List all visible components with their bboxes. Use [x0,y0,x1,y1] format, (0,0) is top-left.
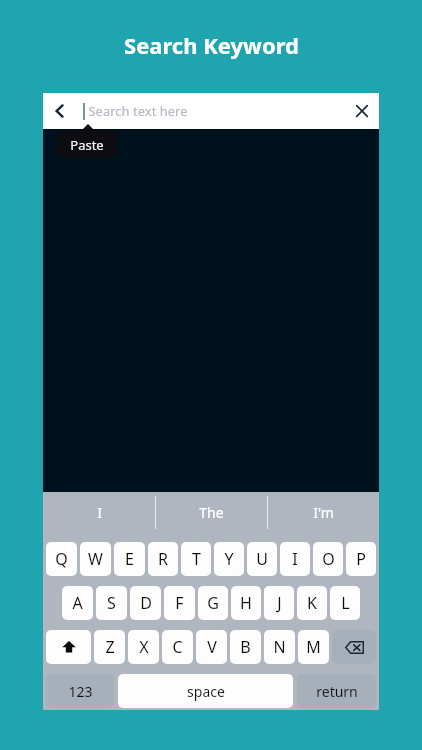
button[interactable]: C [162,630,193,664]
staticText: W [88,548,103,570]
staticText: R [158,548,168,570]
staticText: P [356,548,366,570]
staticText: L [341,592,350,614]
button[interactable]: H [231,586,261,620]
button[interactable]: Back [43,94,77,128]
staticText: space [187,682,225,701]
button[interactable]: I [280,542,310,576]
staticText: Paste [70,136,104,154]
button[interactable]: Shift [46,630,91,664]
button[interactable]: S [96,586,127,620]
staticText: B [240,636,251,658]
staticText: Search Keyword [124,30,299,60]
button[interactable]: G [198,586,228,620]
button[interactable]: The [156,492,267,533]
staticText: H [240,592,252,614]
button[interactable]: V [196,630,227,664]
staticText: G [207,592,219,614]
button[interactable]: O [313,542,343,576]
staticText: M [306,636,321,658]
button[interactable]: A [62,586,93,620]
button[interactable]: N [264,630,295,664]
staticText: Q [55,548,68,570]
button[interactable]: Paste [57,131,117,158]
staticText: T [192,548,201,570]
staticText: Search text here [88,102,188,120]
button[interactable]: K [297,586,327,620]
staticText: return [316,682,358,701]
button[interactable]: T [181,542,211,576]
button[interactable]: X [128,630,159,664]
button[interactable]: P [346,542,376,576]
staticText: F [175,592,184,614]
button[interactable]: D [130,586,161,620]
staticText: O [322,548,335,570]
button[interactable]: U [247,542,277,576]
button[interactable]: L [330,586,360,620]
staticText: X [139,636,149,658]
staticText: I [97,503,102,522]
button[interactable]: M [298,630,329,664]
staticText: Z [105,636,115,658]
button[interactable]: return [297,674,376,708]
button[interactable]: Clear search [345,94,379,128]
button[interactable]: Search text here [83,93,188,129]
button[interactable]: W [80,542,111,576]
staticText: Y [224,548,234,570]
staticText: I'm [313,503,334,522]
staticText: A [72,592,83,614]
button[interactable]: 123 [46,674,114,708]
staticText: S [107,592,116,614]
staticText: I [292,548,298,570]
button[interactable]: Z [94,630,125,664]
staticText: C [172,636,183,658]
staticText: D [140,592,152,614]
button[interactable]: F [164,586,195,620]
button[interactable]: Y [214,542,244,576]
staticText: 123 [68,682,93,701]
button[interactable]: E [114,542,145,576]
button[interactable]: R [148,542,178,576]
staticText: K [307,592,317,614]
staticText: E [125,548,134,570]
button[interactable]: Q [46,542,77,576]
button[interactable]: J [264,586,294,620]
button[interactable]: B [230,630,261,664]
staticText: V [207,636,217,658]
button[interactable]: I [43,492,155,533]
button[interactable]: space [118,674,293,708]
staticText: U [256,548,268,570]
staticText: The [199,503,224,522]
button[interactable]: I'm [268,492,379,533]
staticText: N [273,636,286,658]
staticText: J [277,592,282,614]
button[interactable]: Backspace [332,630,376,664]
